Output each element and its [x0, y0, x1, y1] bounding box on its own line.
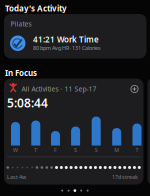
staticText: 5:08:44	[7, 95, 48, 111]
staticText: T	[34, 146, 37, 154]
staticText: 41:21 Work Time	[33, 34, 99, 45]
button[interactable]: Add activity	[130, 84, 139, 93]
staticText: M	[114, 146, 119, 154]
staticText: In Focus	[5, 67, 37, 78]
staticText: 80 bpm Avg HR · 131 Calories	[33, 44, 101, 52]
button[interactable]: Pilates	[4, 14, 146, 58]
staticText: 17d streak	[112, 173, 138, 181]
staticText: Last 4w	[7, 173, 26, 181]
staticText: Pilates	[10, 19, 31, 28]
staticText: T	[135, 146, 138, 154]
staticText: W	[13, 146, 18, 154]
staticText: F	[54, 146, 57, 154]
button[interactable]: All Activities · 11 Sep-17	[4, 78, 143, 184]
staticText: All Activities · 11 Sep-17	[21, 84, 96, 93]
staticText: Today's Activity	[5, 3, 67, 14]
staticText: S	[74, 146, 77, 154]
staticText: S	[95, 146, 98, 154]
